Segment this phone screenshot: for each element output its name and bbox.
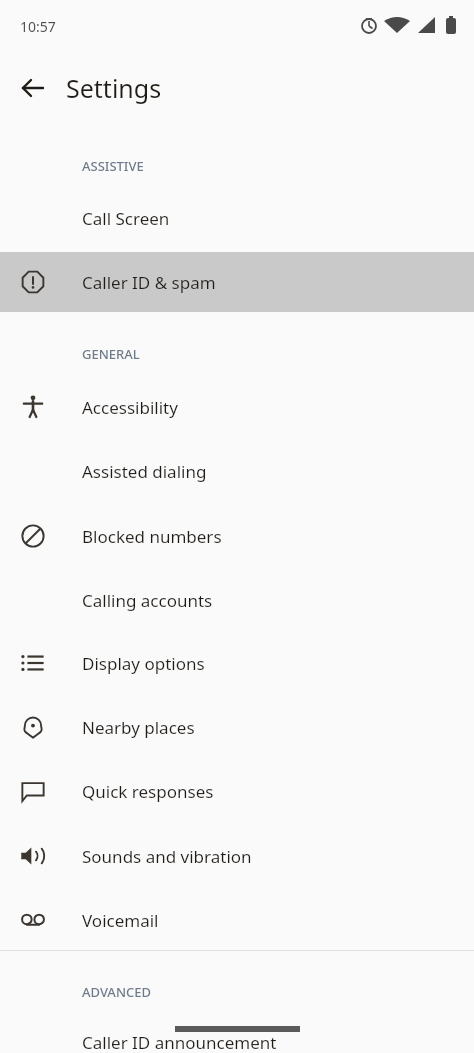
button[interactable]: Calling accounts bbox=[0, 570, 474, 630]
button[interactable]: Caller ID & spam bbox=[0, 252, 474, 312]
button[interactable]: Accessibility bbox=[0, 377, 474, 437]
button[interactable]: Quick responses bbox=[0, 761, 474, 821]
button[interactable]: Voicemail bbox=[0, 890, 474, 950]
staticText: Voicemail bbox=[82, 909, 159, 932]
staticText: Caller ID announcement bbox=[82, 1031, 277, 1053]
button[interactable]: Assisted dialing bbox=[0, 441, 474, 501]
staticText: Sounds and vibration bbox=[82, 845, 252, 868]
staticText: Accessibility bbox=[82, 396, 178, 419]
staticText: Assisted dialing bbox=[82, 460, 207, 483]
staticText: Display options bbox=[82, 652, 205, 675]
staticText: Caller ID & spam bbox=[82, 271, 216, 294]
button[interactable]: Caller ID announcement bbox=[0, 1012, 474, 1053]
button[interactable]: Nearby places bbox=[0, 697, 474, 757]
staticText: Quick responses bbox=[82, 780, 214, 803]
staticText: Call Screen bbox=[82, 207, 170, 230]
staticText: GENERAL bbox=[82, 345, 140, 363]
staticText: ADVANCED bbox=[82, 983, 151, 1001]
button[interactable]: Blocked numbers bbox=[0, 506, 474, 566]
staticText: Calling accounts bbox=[82, 589, 213, 612]
staticText: Blocked numbers bbox=[82, 525, 222, 548]
button[interactable]: Sounds and vibration bbox=[0, 826, 474, 886]
staticText: 10:57 bbox=[20, 17, 56, 36]
staticText: ASSISTIVE bbox=[82, 157, 144, 175]
button[interactable]: Display options bbox=[0, 633, 474, 693]
button[interactable]: Back bbox=[0, 62, 66, 114]
staticText: Nearby places bbox=[82, 716, 195, 739]
button[interactable]: Call Screen bbox=[0, 188, 474, 248]
staticText: Settings bbox=[66, 71, 162, 105]
